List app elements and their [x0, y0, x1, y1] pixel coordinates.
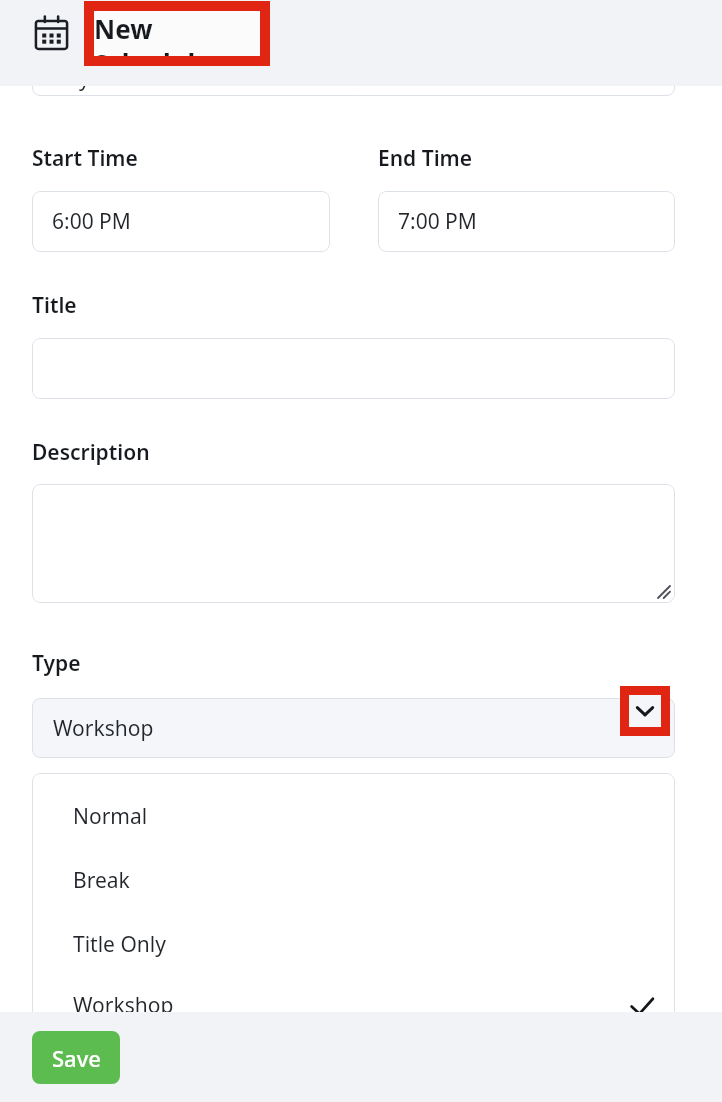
button[interactable]: 6:00 PM — [32, 191, 330, 252]
staticText: Save — [52, 1043, 101, 1073]
staticText: Description — [32, 438, 150, 467]
staticText: Break — [73, 866, 130, 895]
button[interactable]: Workshop — [32, 976, 675, 1035]
staticText: 6:00 PM — [52, 207, 131, 236]
staticText: New Schedule — [94, 11, 260, 56]
button[interactable]: Calendar — [30, 12, 72, 54]
staticText: Type — [32, 649, 81, 678]
button[interactable]: 7:00 PM — [378, 191, 675, 252]
staticText: Title — [32, 291, 77, 320]
staticText: Workshop — [53, 714, 154, 743]
button[interactable] — [32, 484, 675, 603]
button[interactable]: Normal — [32, 784, 675, 848]
button[interactable]: Save — [32, 1031, 120, 1084]
button[interactable]: Day 1 — [32, 86, 675, 122]
button[interactable]: Break — [32, 848, 675, 912]
staticText: Start Time — [32, 144, 138, 173]
button[interactable]: Open type dropdown — [629, 695, 661, 727]
staticText: Day 1 — [52, 86, 108, 93]
staticText: End Time — [378, 144, 473, 173]
staticText: Title Only — [73, 930, 166, 959]
staticText: 7:00 PM — [398, 207, 477, 236]
button[interactable]: Title Only — [32, 912, 675, 976]
button[interactable] — [32, 338, 675, 399]
button[interactable]: Workshop — [32, 698, 675, 758]
staticText: Workshop — [73, 991, 174, 1020]
staticText: Normal — [73, 802, 148, 831]
